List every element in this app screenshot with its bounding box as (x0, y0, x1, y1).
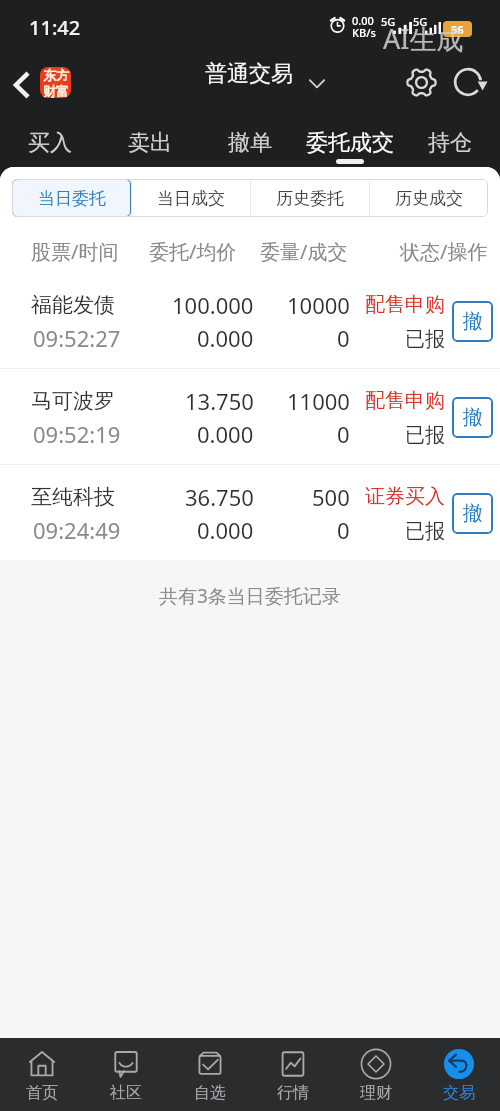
staticText: 配售申购 (365, 388, 445, 413)
staticText: 10000 (287, 290, 350, 320)
button[interactable]: 行情 (251, 1038, 334, 1111)
staticText: 100.000 (172, 290, 254, 320)
staticText: 撤单 (228, 129, 272, 157)
staticText: 委量/成交 (260, 238, 348, 265)
staticText: 5G (381, 14, 396, 29)
staticText: 委托/均价 (149, 238, 237, 265)
staticText: 买入 (28, 129, 72, 157)
staticText: 11:42 (29, 14, 81, 41)
button[interactable]: 交易 (417, 1038, 500, 1111)
staticText: 0 (337, 515, 350, 545)
button[interactable]: 至纯科技 (0, 465, 500, 560)
staticText: 56 (451, 22, 464, 37)
staticText: 09:52:19 (33, 419, 121, 449)
button[interactable]: East Money logo (40, 67, 71, 98)
button[interactable]: 理财 (334, 1038, 417, 1111)
staticText: 500 (312, 482, 350, 512)
button[interactable]: 买入 (0, 116, 100, 167)
staticText: 撤 (463, 309, 483, 334)
staticText: 首页 (26, 1083, 58, 1103)
staticText: 已报 (405, 519, 445, 544)
staticText: 行情 (277, 1083, 309, 1103)
button[interactable]: 社区 (84, 1038, 168, 1111)
button[interactable]: 普通交易 (205, 60, 293, 88)
staticText: 历史成交 (395, 188, 463, 209)
staticText: 交易 (443, 1083, 475, 1103)
staticText: 持仓 (428, 129, 472, 157)
staticText: 09:24:49 (33, 515, 121, 545)
staticText: 股票/时间 (31, 238, 119, 265)
staticText: 东方 (43, 67, 69, 83)
staticText: 自选 (194, 1083, 226, 1103)
staticText: 社区 (110, 1083, 142, 1103)
staticText: 福能发债 (31, 292, 115, 318)
staticText: 0.000 (197, 323, 254, 353)
button[interactable]: 当日成交 (131, 179, 250, 217)
button[interactable]: Settings (399, 60, 443, 104)
staticText: 13.750 (185, 386, 254, 416)
staticText: 0 (337, 323, 350, 353)
staticText: 5G (413, 14, 428, 29)
staticText: 0.000 (197, 419, 254, 449)
staticText: 理财 (360, 1083, 392, 1103)
staticText: 财富 (43, 83, 69, 98)
button[interactable]: 撤 (452, 397, 493, 438)
button[interactable]: 福能发债 (0, 273, 500, 368)
button[interactable]: 卖出 (100, 116, 200, 167)
button[interactable]: 当日委托 (12, 179, 131, 217)
staticText: 历史委托 (276, 188, 344, 209)
staticText: 状态/操作 (400, 238, 488, 265)
staticText: 委托成交 (306, 129, 394, 157)
staticText: 共有3条当日委托记录 (159, 583, 341, 609)
staticText: KB/s (352, 25, 376, 40)
staticText: 36.750 (185, 482, 254, 512)
button[interactable]: 持仓 (400, 116, 500, 167)
staticText: 普通交易 (205, 60, 293, 88)
button[interactable]: 撤 (452, 493, 493, 534)
button[interactable]: 马可波罗 (0, 369, 500, 464)
button[interactable]: Back (4, 67, 40, 103)
staticText: 卖出 (128, 129, 172, 157)
button[interactable]: Refresh (446, 60, 490, 104)
staticText: 配售申购 (365, 292, 445, 317)
staticText: 已报 (405, 327, 445, 352)
staticText: 0.000 (197, 515, 254, 545)
button[interactable]: 历史成交 (369, 179, 488, 217)
staticText: 11000 (287, 386, 350, 416)
staticText: 当日成交 (157, 188, 225, 209)
button[interactable]: 撤单 (200, 116, 300, 167)
staticText: 当日委托 (38, 188, 106, 209)
button[interactable]: 首页 (0, 1038, 84, 1111)
staticText: AI生成 (383, 20, 464, 57)
staticText: 0.00 (352, 13, 374, 28)
staticText: 撤 (463, 405, 483, 430)
staticText: 已报 (405, 423, 445, 448)
staticText: 至纯科技 (31, 484, 115, 510)
staticText: 09:52:27 (33, 323, 121, 353)
button[interactable]: 委托成交 (300, 116, 400, 167)
button[interactable]: Switch account (307, 73, 327, 93)
button[interactable]: 自选 (168, 1038, 251, 1111)
staticText: 0 (337, 419, 350, 449)
staticText: 证券买入 (365, 484, 445, 509)
staticText: 撤 (463, 501, 483, 526)
button[interactable]: 历史委托 (250, 179, 369, 217)
button[interactable]: 撤 (452, 301, 493, 342)
staticText: 马可波罗 (31, 388, 115, 414)
